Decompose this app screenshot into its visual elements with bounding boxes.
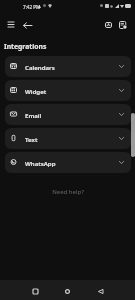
staticText: Integrations bbox=[4, 42, 47, 51]
staticText: Need help? bbox=[52, 188, 84, 196]
button[interactable]: Text bbox=[5, 128, 131, 149]
button[interactable]: Calendars bbox=[5, 56, 131, 77]
button[interactable]: Need help? bbox=[0, 188, 135, 196]
button[interactable]: Menu bbox=[3, 17, 18, 32]
staticText: 7:42 PM bbox=[23, 4, 41, 10]
button[interactable]: New note bbox=[116, 18, 130, 32]
button[interactable]: Email bbox=[5, 104, 131, 125]
button[interactable]: Back bbox=[92, 283, 108, 299]
button[interactable]: Recents bbox=[27, 283, 43, 299]
button[interactable]: WhatsApp bbox=[5, 152, 131, 173]
button[interactable]: Home bbox=[59, 283, 75, 299]
staticText: WhatsApp bbox=[25, 159, 56, 167]
button[interactable]: Back bbox=[19, 17, 35, 33]
button[interactable]: Contact card bbox=[101, 18, 115, 32]
staticText: Text bbox=[25, 135, 38, 143]
staticText: Email bbox=[25, 111, 42, 119]
button[interactable]: Widget bbox=[5, 80, 131, 101]
staticText: Calendars bbox=[25, 63, 55, 71]
staticText: Widget bbox=[25, 87, 47, 95]
